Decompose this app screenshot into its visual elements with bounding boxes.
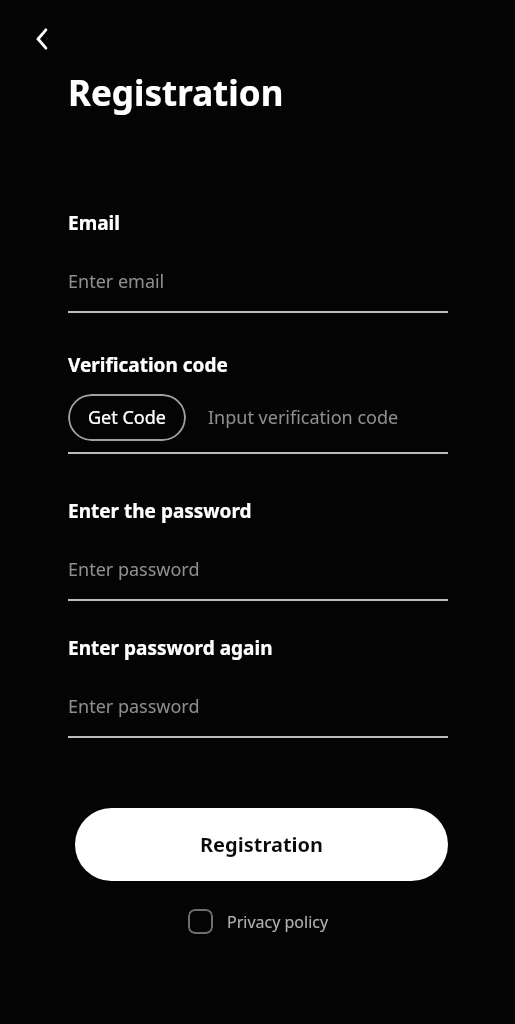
staticText: Email: [68, 210, 120, 236]
staticText: Registration: [200, 831, 324, 858]
button[interactable]: Back: [24, 21, 60, 57]
staticText: Registration: [68, 69, 284, 117]
staticText: Input verification code: [208, 405, 399, 430]
staticText: Privacy policy: [227, 911, 329, 933]
button[interactable]: Registration: [75, 808, 448, 881]
staticText: Enter password again: [68, 635, 273, 661]
staticText: Enter password: [68, 557, 200, 582]
button[interactable]: Get Code: [68, 394, 186, 441]
staticText: Verification code: [68, 352, 228, 378]
button[interactable]: Privacy policy: [188, 909, 329, 934]
staticText: Enter email: [68, 269, 165, 294]
staticText: Get Code: [88, 405, 166, 430]
staticText: Enter password: [68, 694, 200, 719]
staticText: Enter the password: [68, 498, 252, 524]
